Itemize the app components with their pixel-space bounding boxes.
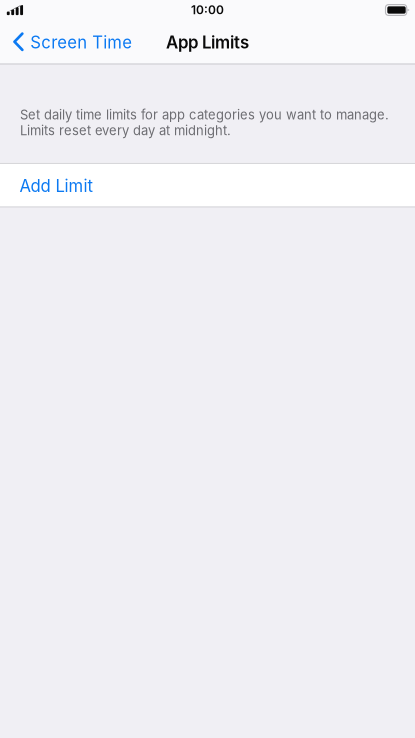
staticText: Add Limit (19, 176, 92, 196)
staticText: App Limits (166, 32, 249, 52)
staticText: Screen Time (30, 32, 132, 53)
staticText: 10:00 (191, 3, 224, 17)
staticText: Set daily time limits for app categories… (20, 107, 389, 138)
button[interactable]: Add Limit (0, 164, 415, 206)
button[interactable]: Back to Screen Time (0, 22, 142, 62)
